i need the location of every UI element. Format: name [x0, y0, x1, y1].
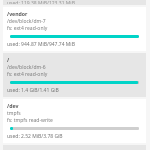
staticText: fs: tmpfs read-write [7, 117, 53, 124]
staticText: /dev/block/dm-6 [7, 64, 46, 71]
staticText: used: 944.87 MiB/947.74 MiB [7, 41, 75, 48]
staticText: / [7, 56, 10, 63]
staticText: used: 2.52 MiB/3.78 GiB [7, 133, 63, 140]
staticText: used: 1.4 GiB/1.41 GiB [7, 87, 59, 94]
staticText: fs: ext4 read-only [7, 25, 48, 32]
button[interactable]: /vendor [3, 7, 146, 51]
staticText: fs: ext4 read-only [7, 71, 48, 78]
button[interactable]: used: 119.38 MiB/123.31 MiB [3, 0, 146, 5]
button[interactable]: / [3, 53, 146, 97]
staticText: /dev [7, 102, 19, 109]
staticText: /vendor [7, 10, 28, 17]
staticText: used: 119.38 MiB/123.31 MiB [7, 0, 75, 4]
staticText: tmpfs [7, 110, 21, 117]
staticText: /dev/block/dm-7 [7, 18, 46, 25]
button[interactable]: /dev [3, 99, 146, 143]
